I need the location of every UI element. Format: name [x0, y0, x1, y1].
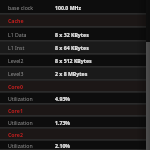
staticText: Level2: [8, 57, 24, 64]
button[interactable]: Level2: [0, 54, 150, 67]
staticText: L1 Data: [8, 31, 27, 38]
staticText: Core1: [8, 107, 23, 114]
staticText: 2.10%: [55, 142, 71, 149]
button[interactable]: Core2: [0, 128, 150, 140]
staticText: L1 Inst: [8, 44, 25, 51]
button[interactable]: base clock: [0, 0, 150, 14]
staticText: Utilization: [8, 142, 33, 149]
staticText: 8 x 64 KBytes: [55, 44, 89, 51]
button[interactable]: Core1: [0, 104, 150, 116]
staticText: 2 x 8 MBytes: [55, 70, 88, 77]
staticText: Core2: [8, 131, 23, 138]
staticText: Utilization: [8, 95, 33, 102]
staticText: 8 x 512 KBytes: [55, 57, 92, 64]
button[interactable]: L1 Data: [0, 27, 150, 41]
button[interactable]: Utilization: [0, 140, 150, 150]
staticText: 4.93%: [55, 95, 71, 102]
button[interactable]: Utilization: [0, 92, 150, 104]
staticText: Cache: [8, 17, 24, 24]
staticText: 1.73%: [55, 119, 71, 126]
button[interactable]: Cache: [0, 14, 150, 27]
button[interactable]: Core0: [0, 80, 150, 92]
button[interactable]: L1 Inst: [0, 41, 150, 54]
staticText: Core0: [8, 83, 23, 90]
staticText: 100.0 MHz: [55, 4, 82, 11]
button[interactable]: Level3: [0, 67, 150, 80]
staticText: 8 x 32 KBytes: [55, 31, 89, 38]
staticText: Level3: [8, 70, 24, 77]
staticText: Utilization: [8, 119, 33, 126]
button[interactable]: Utilization: [0, 116, 150, 128]
staticText: base clock: [8, 4, 34, 11]
